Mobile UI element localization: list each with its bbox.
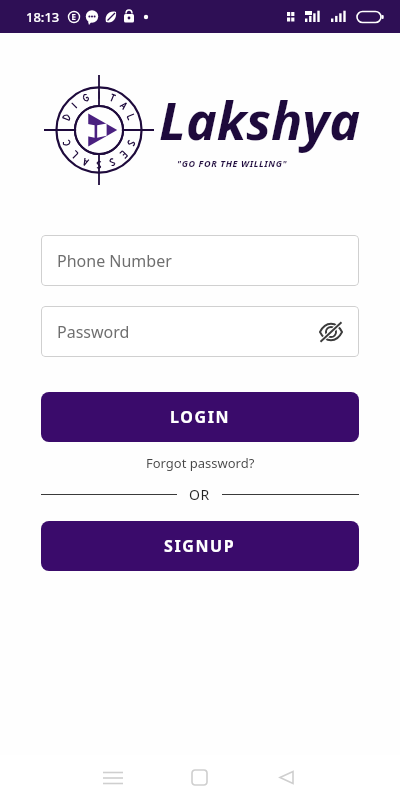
button[interactable]: Home: [156, 755, 243, 800]
staticText: LOGIN: [170, 406, 231, 428]
button[interactable]: SIGNUP: [41, 521, 359, 571]
staticText: 18:13: [26, 8, 60, 26]
button[interactable]: Phone Number: [41, 235, 359, 286]
button[interactable]: Forgot password?: [146, 454, 255, 472]
staticText: Forgot password?: [146, 454, 255, 472]
staticText: "GO FOR THE WILLING": [177, 157, 288, 169]
staticText: Password: [57, 321, 130, 343]
button[interactable]: Back: [243, 755, 330, 800]
button[interactable]: Recents: [70, 755, 156, 800]
staticText: OR: [189, 485, 210, 504]
button[interactable]: Password: [41, 306, 359, 357]
button[interactable]: LOGIN: [41, 392, 359, 442]
staticText: SIGNUP: [164, 535, 236, 557]
button[interactable]: Show password: [317, 318, 345, 346]
staticText: Lakshya: [159, 84, 361, 155]
staticText: Phone Number: [57, 250, 172, 272]
